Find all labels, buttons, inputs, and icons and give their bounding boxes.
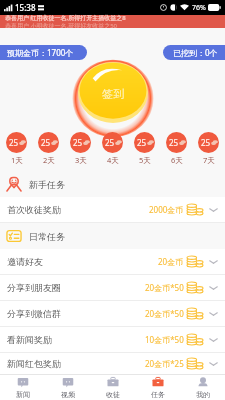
staticText: 4天 bbox=[107, 155, 119, 165]
staticText: 我的 bbox=[196, 390, 210, 399]
staticText: 5天 bbox=[139, 155, 151, 165]
button[interactable]: 25 bbox=[38, 132, 59, 165]
staticText: 收徒 bbox=[106, 390, 120, 399]
button[interactable]: 25 bbox=[166, 132, 187, 165]
button[interactable]: 新闻红包奖励 bbox=[0, 353, 225, 374]
staticText: 25 bbox=[9, 137, 19, 148]
staticText: 签到 bbox=[102, 87, 124, 101]
staticText: 任务 bbox=[151, 390, 165, 399]
staticText: 25 bbox=[105, 137, 115, 148]
staticText: 看新闻奖励 bbox=[7, 334, 52, 345]
staticText: 分享到朋友圈 bbox=[7, 282, 61, 293]
staticText: 新手任务 bbox=[29, 179, 65, 190]
staticText: 25 bbox=[137, 137, 147, 148]
button[interactable]: 任务 bbox=[135, 375, 180, 400]
staticText: 新闻 bbox=[16, 390, 30, 399]
staticText: 20金币 bbox=[158, 256, 184, 267]
staticText: 预期金币：1700个 bbox=[7, 47, 74, 58]
staticText: 25 bbox=[41, 137, 51, 148]
button[interactable]: 看新闻奖励 bbox=[0, 327, 225, 353]
button[interactable]: 25 bbox=[6, 132, 27, 165]
staticText: 7天 bbox=[203, 155, 215, 165]
staticText: 3天 bbox=[75, 155, 87, 165]
staticText: 76% bbox=[192, 3, 206, 13]
button[interactable]: 首次收徒奖励 bbox=[0, 197, 225, 223]
button[interactable]: 分享到朋友圈 bbox=[0, 275, 225, 301]
staticText: 25 bbox=[201, 137, 211, 148]
staticText: 10金币*50 bbox=[145, 334, 184, 345]
staticText: 已挖到：0个 bbox=[173, 47, 218, 58]
staticText: 25 bbox=[73, 137, 83, 148]
staticText: 视频 bbox=[61, 390, 75, 399]
button[interactable]: 新闻 bbox=[0, 375, 45, 400]
staticText: 2天 bbox=[43, 155, 55, 165]
button[interactable]: 预期金币：1700个 bbox=[0, 45, 87, 60]
button[interactable]: 邀请好友 bbox=[0, 249, 225, 275]
staticText: 15:38 bbox=[15, 2, 36, 13]
staticText: 20金币*25 bbox=[145, 358, 184, 369]
button[interactable]: 25 bbox=[198, 132, 219, 165]
staticText: 邀请好友 bbox=[7, 256, 43, 267]
button[interactable]: 25 bbox=[102, 132, 123, 165]
staticText: 20金币*50 bbox=[145, 308, 184, 319]
button[interactable]: 我的 bbox=[180, 375, 225, 400]
button[interactable]: 已挖到：0个 bbox=[163, 45, 225, 60]
staticText: 25 bbox=[169, 137, 179, 148]
staticText: 1天 bbox=[11, 155, 23, 165]
staticText: 新闻红包奖励 bbox=[7, 358, 61, 369]
staticText: 恭喜用户 红用收徒一名,所得打开主播收益之8 bbox=[5, 14, 126, 22]
staticText: 日常任务 bbox=[29, 231, 65, 242]
button[interactable]: 分享到微信群 bbox=[0, 301, 225, 327]
staticText: 20金币*50 bbox=[145, 282, 184, 293]
button[interactable]: 收徒 bbox=[90, 375, 135, 400]
staticText: 分享到微信群 bbox=[7, 308, 61, 319]
button[interactable]: 25 bbox=[134, 132, 155, 165]
staticText: 6天 bbox=[171, 155, 183, 165]
button[interactable]: 恭喜用户 红用收徒一名,所得打开主播收益之8 bbox=[0, 15, 225, 28]
button[interactable]: 视频 bbox=[45, 375, 90, 400]
button[interactable]: 签到 bbox=[65, 60, 161, 132]
staticText: 2000金币 bbox=[149, 204, 184, 215]
staticText: 首次收徒奖励 bbox=[7, 204, 61, 215]
button[interactable]: 25 bbox=[70, 132, 91, 165]
staticText: 恭喜用户 小明收徒一名,获得好友收益之50 bbox=[5, 22, 118, 30]
